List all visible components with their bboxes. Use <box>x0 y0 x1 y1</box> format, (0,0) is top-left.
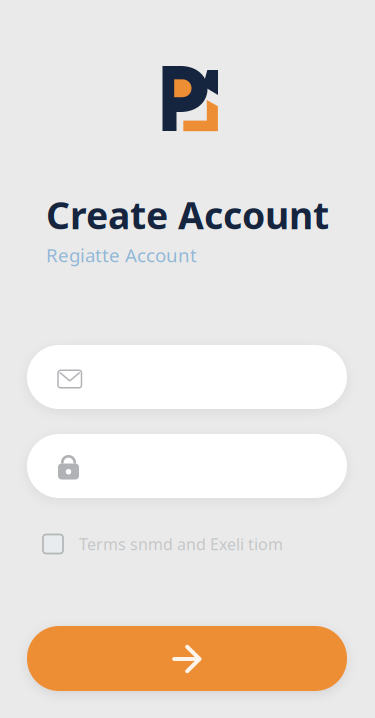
button[interactable]: Password <box>27 434 347 498</box>
button[interactable]: Email <box>27 345 347 409</box>
staticText: Regiatte Account <box>46 243 197 267</box>
button[interactable]: Continue <box>27 626 347 691</box>
staticText: Create Account <box>46 190 329 240</box>
staticText: Terms snmd and Exeli tiom <box>79 533 283 555</box>
button[interactable]: Terms snmd and Exeli tiom <box>43 529 348 559</box>
